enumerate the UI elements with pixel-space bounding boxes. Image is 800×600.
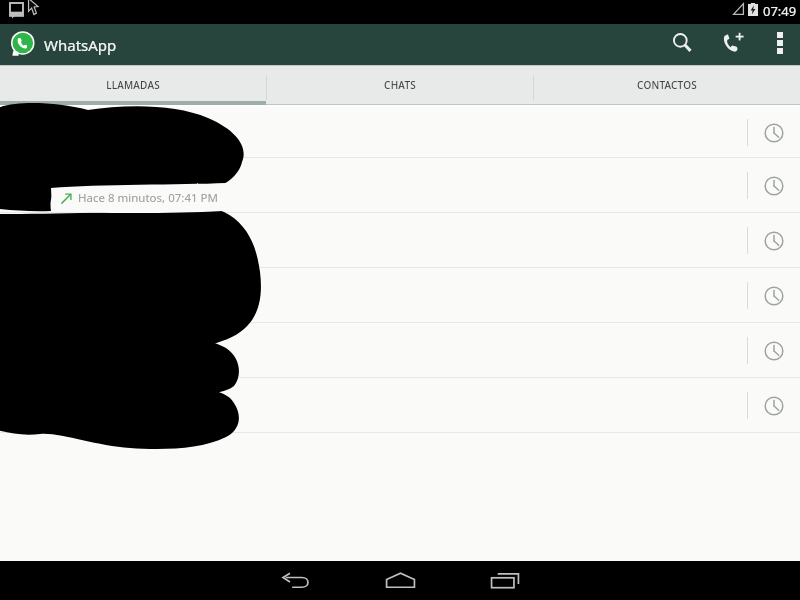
- button[interactable]: More options: [760, 24, 800, 65]
- staticText: LLAMADAS: [106, 78, 160, 92]
- staticText: CHATS: [384, 78, 416, 92]
- button[interactable]: Call details: [750, 268, 798, 323]
- button[interactable]: Call details: [750, 323, 798, 378]
- button[interactable]: Search: [658, 24, 706, 65]
- staticText: CONTACTOS: [637, 78, 697, 92]
- button[interactable]: Recents: [457, 561, 553, 600]
- button[interactable]: Call details: [0, 107, 800, 158]
- button[interactable]: Call details: [0, 213, 800, 268]
- staticText: Hace 8 minutos, 07:41 PM: [78, 190, 218, 206]
- staticText: WhatsApp: [44, 35, 117, 55]
- button[interactable]: Call details: [750, 158, 798, 213]
- button[interactable]: Call details: [750, 213, 798, 268]
- button[interactable]: Call details: [750, 378, 798, 433]
- button[interactable]: Call details: [0, 158, 800, 213]
- staticText: 07:49: [763, 2, 797, 20]
- button[interactable]: Call details: [0, 268, 800, 323]
- button[interactable]: Call details: [0, 378, 800, 433]
- button[interactable]: Call details: [0, 323, 800, 378]
- button[interactable]: Call details: [750, 107, 798, 158]
- button[interactable]: Home: [352, 561, 448, 600]
- button[interactable]: CONTACTOS: [533, 66, 800, 105]
- button[interactable]: LLAMADAS: [0, 66, 266, 105]
- button[interactable]: New call: [709, 24, 757, 65]
- button[interactable]: Back: [248, 561, 344, 600]
- button[interactable]: CHATS: [266, 66, 533, 105]
